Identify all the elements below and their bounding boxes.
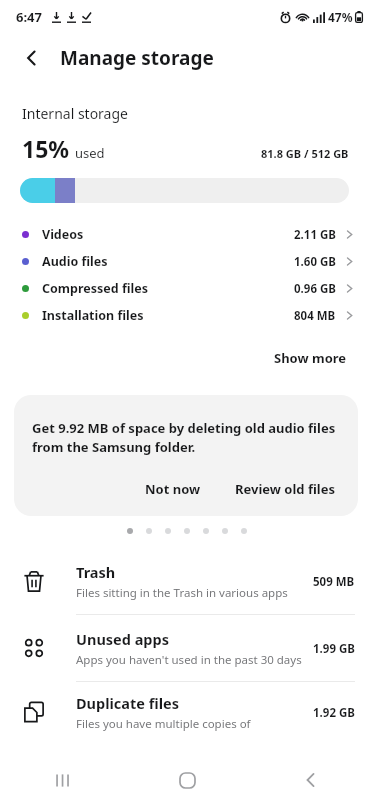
staticText: Audio files <box>42 253 108 270</box>
staticText: Review old files <box>235 480 336 498</box>
staticText: Manage storage <box>60 45 214 71</box>
button[interactable]: Not now <box>137 474 209 504</box>
staticText: Trash <box>76 562 116 582</box>
button[interactable]: Show more <box>268 343 353 373</box>
staticText: 81.8 GB / 512 GB <box>261 146 349 161</box>
staticText: Get 9.92 MB of space by deleting old aud… <box>32 419 342 456</box>
button[interactable]: Review old files <box>229 474 342 504</box>
button[interactable]: Recents <box>39 760 85 800</box>
staticText: 1.99 GB <box>313 641 355 657</box>
staticText: used <box>75 144 105 162</box>
button[interactable]: Videos <box>0 221 373 248</box>
staticText: 47% <box>328 9 353 25</box>
staticText: 1.60 GB <box>294 254 336 270</box>
staticText: Duplicate files <box>76 693 179 713</box>
button[interactable]: Back <box>288 760 334 800</box>
button[interactable]: Home <box>164 760 210 800</box>
staticText: Files sitting in the Trash in various ap… <box>76 585 288 601</box>
button[interactable]: Compressed files <box>0 275 373 302</box>
staticText: Apps you haven't used in the past 30 day… <box>76 652 302 668</box>
staticText: Unused apps <box>76 629 169 649</box>
staticText: Compressed files <box>42 280 148 297</box>
staticText: 0.96 GB <box>294 281 336 297</box>
staticText: 2.11 GB <box>294 227 336 243</box>
button[interactable]: Audio files <box>0 248 373 275</box>
staticText: 6:47 <box>16 8 42 26</box>
staticText: Show more <box>274 349 347 367</box>
staticText: Internal storage <box>22 104 128 123</box>
button[interactable]: Installation files <box>0 302 373 329</box>
button[interactable]: Duplicate files <box>0 682 373 742</box>
staticText: Installation files <box>42 307 144 324</box>
staticText: 15% <box>22 133 70 164</box>
staticText: 804 MB <box>294 308 336 324</box>
staticText: Videos <box>42 226 84 243</box>
button[interactable]: Back <box>14 40 50 76</box>
button[interactable]: Get 9.92 MB of space by deleting old aud… <box>14 395 358 516</box>
button[interactable]: Unused apps <box>0 615 373 681</box>
button[interactable]: Trash <box>0 548 373 614</box>
staticText: Files you have multiple copies of <box>76 716 251 732</box>
staticText: 509 MB <box>313 574 355 590</box>
staticText: Not now <box>145 480 201 498</box>
staticText: 1.92 GB <box>313 705 355 721</box>
